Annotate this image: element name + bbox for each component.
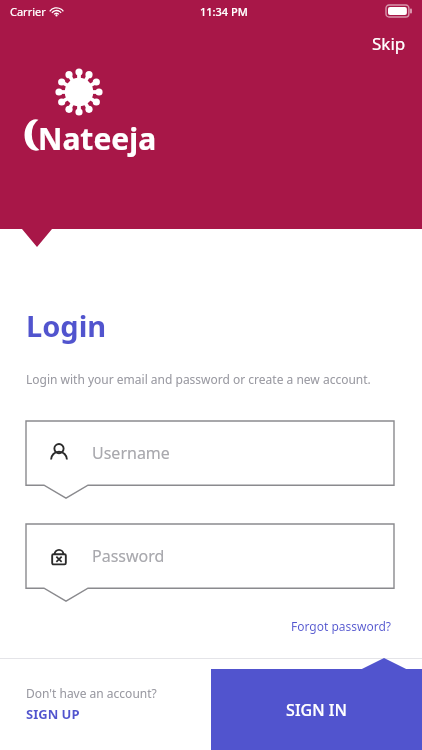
staticText: Login xyxy=(26,306,107,345)
staticText: SIGN IN xyxy=(286,699,347,721)
staticText: Forgot password? xyxy=(291,618,392,634)
staticText: Username xyxy=(92,442,170,464)
staticText: Carrier xyxy=(10,4,46,19)
staticText: 11:34 PM xyxy=(200,4,248,19)
staticText: Password xyxy=(92,545,165,567)
staticText: Nateeja xyxy=(38,118,157,159)
button[interactable]: Skip xyxy=(356,28,422,59)
button[interactable]: Don't have an account? xyxy=(0,681,169,727)
staticText: Login with your email and password or cr… xyxy=(26,371,371,387)
staticText: Skip xyxy=(372,32,406,55)
button[interactable]: Forgot password? xyxy=(287,614,396,638)
button[interactable]: SIGN IN xyxy=(211,658,422,750)
staticText: Don't have an account? xyxy=(26,685,157,701)
button[interactable]: Username xyxy=(26,421,394,497)
button[interactable]: Password xyxy=(26,524,394,600)
staticText: SIGN UP xyxy=(26,705,80,723)
